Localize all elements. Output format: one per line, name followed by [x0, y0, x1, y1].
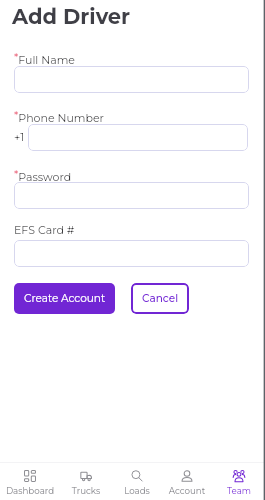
- staticText: Dashboard: [5, 486, 55, 497]
- staticText: *Password: [14, 167, 72, 184]
- button[interactable]: Dashboard: [5, 462, 55, 500]
- button[interactable]: Trucks: [61, 462, 111, 500]
- button[interactable]: Team: [214, 462, 264, 500]
- button[interactable]: [28, 124, 248, 151]
- button[interactable]: Cancel: [131, 283, 189, 314]
- button[interactable]: Account: [162, 462, 212, 500]
- staticText: Cancel: [142, 292, 179, 305]
- staticText: Loads: [112, 486, 162, 497]
- staticText: EFS Card #: [14, 223, 75, 236]
- staticText: +1: [14, 130, 25, 143]
- button[interactable]: [14, 182, 249, 209]
- button[interactable]: [14, 240, 249, 267]
- button[interactable]: Loads: [112, 462, 162, 500]
- button[interactable]: [14, 66, 249, 93]
- staticText: Trucks: [61, 486, 111, 497]
- staticText: *Phone Number: [14, 108, 104, 125]
- staticText: *Full Name: [14, 50, 75, 67]
- staticText: Team: [214, 486, 264, 497]
- staticText: Add Driver: [12, 4, 131, 30]
- staticText: Account: [162, 486, 212, 497]
- button[interactable]: Create Account: [14, 283, 115, 314]
- staticText: Create Account: [24, 292, 106, 305]
